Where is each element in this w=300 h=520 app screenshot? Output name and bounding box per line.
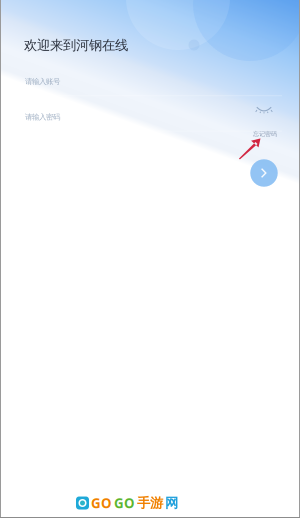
staticText: 请输入账号 <box>25 77 60 86</box>
staticText: 忘记密码 <box>253 130 277 138</box>
button[interactable]: 忘记密码 <box>251 128 279 140</box>
button[interactable]: Show password <box>252 98 276 120</box>
staticText: 网 <box>165 495 178 511</box>
staticText: GO <box>91 494 112 512</box>
button[interactable]: Sign in <box>250 159 278 187</box>
staticText: GO <box>114 494 135 512</box>
staticText: 请输入密码 <box>25 112 60 122</box>
staticText: 手游 <box>137 495 163 511</box>
staticText: 欢迎来到河钢在线 <box>24 37 128 54</box>
